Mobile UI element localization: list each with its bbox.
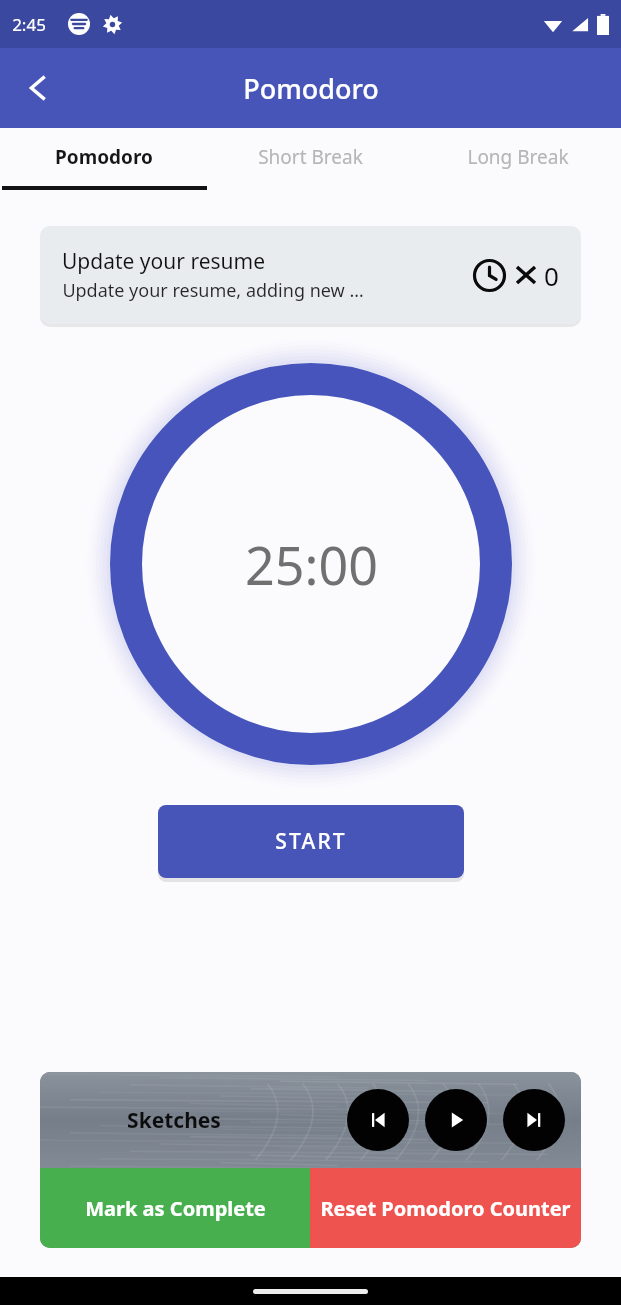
button[interactable]: Pomodoro [0, 128, 207, 190]
button[interactable]: Reset Pomodoro Counter [310, 1168, 581, 1248]
staticText: Update your resume [62, 247, 265, 276]
button[interactable]: Play [425, 1089, 487, 1151]
staticText: Update your resume, adding new … [62, 278, 364, 303]
button[interactable]: Next [503, 1089, 565, 1151]
button[interactable]: Update your resume [40, 226, 581, 324]
button[interactable]: START [158, 805, 464, 878]
staticText: Reset Pomodoro Counter [320, 1195, 571, 1222]
button[interactable]: Back [10, 60, 66, 116]
staticText: Long Break [467, 144, 569, 170]
staticText: 0 [544, 258, 559, 293]
button[interactable]: Mark as Complete [40, 1168, 310, 1248]
staticText: START [275, 827, 347, 856]
staticText: 25:00 [245, 529, 378, 600]
button[interactable]: Previous [347, 1089, 409, 1151]
staticText: Pomodoro [55, 144, 153, 170]
button[interactable]: Short Break [207, 128, 414, 190]
staticText: 2:45 [12, 13, 46, 36]
staticText: Sketches [127, 1106, 221, 1135]
staticText: Pomodoro [243, 70, 379, 107]
button[interactable]: Long Break [414, 128, 621, 190]
staticText: Mark as Complete [85, 1195, 266, 1222]
staticText: Short Break [258, 144, 363, 170]
